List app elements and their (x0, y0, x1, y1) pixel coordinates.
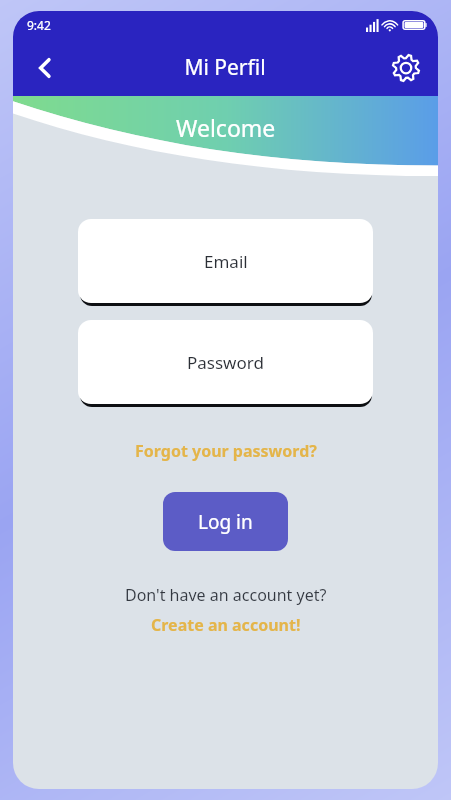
button[interactable]: Password (78, 320, 373, 404)
button[interactable]: Forgot your password? (129, 437, 323, 465)
staticText: Log in (198, 509, 253, 535)
staticText: Forgot your password? (135, 440, 317, 462)
button[interactable]: Back (23, 46, 67, 90)
button[interactable]: Create an account! (145, 612, 307, 638)
staticText: Don't have an account yet? (125, 584, 327, 606)
button[interactable]: Log in (163, 492, 288, 551)
staticText: Password (187, 351, 264, 374)
staticText: Mi Perfil (184, 53, 266, 82)
button[interactable]: Settings (384, 46, 428, 90)
staticText: Email (204, 250, 248, 273)
staticText: Create an account! (151, 614, 301, 636)
button[interactable]: Email (78, 219, 373, 303)
staticText: Welcome (176, 112, 276, 143)
staticText: 9:42 (27, 17, 51, 33)
